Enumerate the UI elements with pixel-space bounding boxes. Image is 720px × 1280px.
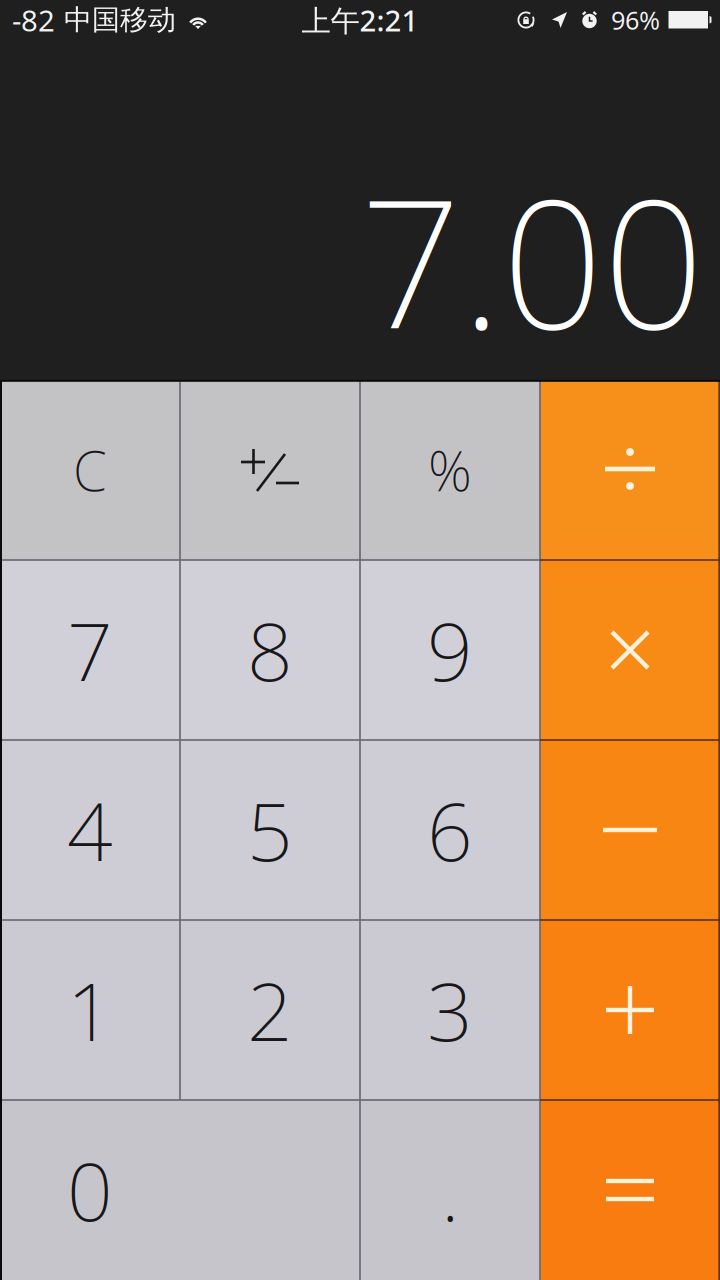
staticText: 中国移动 [64,3,176,37]
button[interactable]: 9 [360,560,540,740]
button[interactable]: Divide [540,380,720,560]
button[interactable]: 4 [0,740,180,920]
staticText: 96% [611,3,660,37]
staticText: 7 [67,597,113,703]
button[interactable]: 8 [180,560,360,740]
button[interactable]: Equals [540,1100,720,1280]
button[interactable]: 2 [180,920,360,1100]
staticText: 3 [427,957,473,1063]
staticText: % [428,434,472,506]
button[interactable]: Plus minus [180,380,360,560]
button[interactable]: 0 [0,1100,360,1280]
staticText: 9 [427,597,473,703]
staticText: 0 [67,1137,113,1243]
staticText: . [441,1137,459,1243]
button[interactable]: Percent [360,380,540,560]
button[interactable]: 7 [0,560,180,740]
button[interactable]: Subtract [540,740,720,920]
button[interactable]: 6 [360,740,540,920]
button[interactable]: Multiply [540,560,720,740]
staticText: 1 [67,957,113,1063]
staticText: 5 [247,777,293,883]
button[interactable]: 1 [0,920,180,1100]
staticText: -82 [12,0,55,39]
button[interactable]: 5 [180,740,360,920]
staticText: C [73,434,107,506]
button[interactable]: 3 [360,920,540,1100]
button[interactable]: . [360,1100,540,1280]
staticText: 上午2:21 [301,0,418,39]
staticText: 2 [247,957,293,1063]
button[interactable]: Clear [0,380,180,560]
staticText: 6 [427,777,473,883]
button[interactable]: Add [540,920,720,1100]
staticText: 4 [67,777,113,883]
staticText: 8 [247,597,293,703]
staticText: 7.00 [360,142,704,378]
